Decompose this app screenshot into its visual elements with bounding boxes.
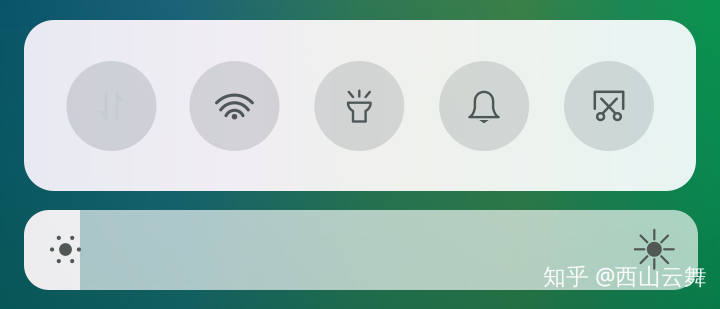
button[interactable]: Cellular Data: [66, 61, 156, 151]
button[interactable]: Flashlight: [314, 61, 404, 151]
button[interactable]: Silent Mode: [439, 61, 529, 151]
button[interactable]: Screenshot: [564, 61, 654, 151]
staticText: 知乎 @西山云舞: [543, 261, 707, 291]
button[interactable]: Wi-Fi: [189, 61, 279, 151]
button[interactable]: Brightness: [24, 210, 698, 290]
